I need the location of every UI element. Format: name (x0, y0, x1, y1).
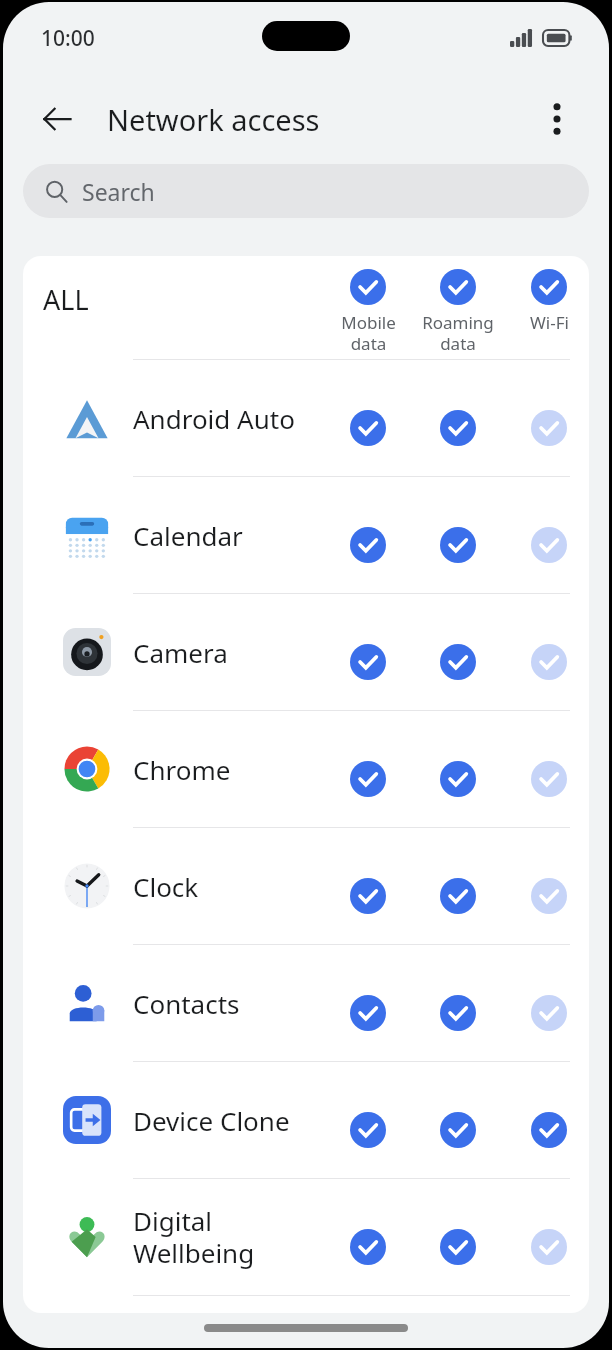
button[interactable]: Calendar (23, 477, 589, 593)
button[interactable] (521, 517, 577, 573)
staticText: Search (82, 176, 155, 207)
button[interactable] (521, 400, 577, 456)
staticText: Mobile data (341, 311, 396, 355)
button[interactable] (340, 517, 396, 573)
button[interactable]: Android Auto (23, 360, 589, 476)
button[interactable]: More options (531, 93, 583, 145)
staticText: Calendar (133, 518, 243, 553)
button[interactable] (340, 400, 396, 456)
button[interactable] (340, 1102, 396, 1158)
button[interactable] (521, 634, 577, 690)
staticText: Android Auto (133, 401, 295, 436)
button[interactable] (430, 634, 486, 690)
button[interactable]: Roaming data (413, 269, 503, 355)
staticText: 10:00 (41, 24, 95, 53)
staticText: Chrome (133, 752, 231, 787)
staticText: Wi-Fi (530, 311, 569, 334)
button[interactable] (340, 985, 396, 1041)
button[interactable] (521, 1102, 577, 1158)
button[interactable] (340, 634, 396, 690)
staticText: Clock (133, 869, 199, 904)
button[interactable]: Device Clone (23, 1062, 589, 1178)
button[interactable] (521, 985, 577, 1041)
button[interactable] (430, 400, 486, 456)
button[interactable] (521, 1219, 577, 1275)
button[interactable] (340, 1219, 396, 1275)
button[interactable] (430, 1219, 486, 1275)
button[interactable]: Clock (23, 828, 589, 944)
button[interactable]: Wi-Fi (504, 269, 589, 334)
button[interactable] (430, 517, 486, 573)
staticText: Network access (107, 100, 320, 139)
button[interactable]: Chrome (23, 711, 589, 827)
button[interactable]: Contacts (23, 945, 589, 1061)
staticText: Roaming data (422, 311, 494, 355)
button[interactable]: Camera (23, 594, 589, 710)
button[interactable] (430, 985, 486, 1041)
button[interactable] (521, 751, 577, 807)
button[interactable]: Back (29, 91, 85, 147)
staticText: Camera (133, 635, 228, 670)
button[interactable]: Mobile data (323, 269, 413, 355)
button[interactable] (340, 868, 396, 924)
button[interactable]: Search (23, 164, 589, 218)
button[interactable]: Digital Wellbeing (23, 1179, 589, 1295)
staticText: Contacts (133, 986, 240, 1021)
button[interactable] (430, 1102, 486, 1158)
button[interactable] (340, 751, 396, 807)
button[interactable] (430, 751, 486, 807)
button[interactable] (430, 868, 486, 924)
staticText: ALL (43, 281, 89, 318)
button[interactable] (521, 868, 577, 924)
staticText: Digital Wellbeing (133, 1203, 255, 1271)
staticText: Device Clone (133, 1103, 290, 1138)
